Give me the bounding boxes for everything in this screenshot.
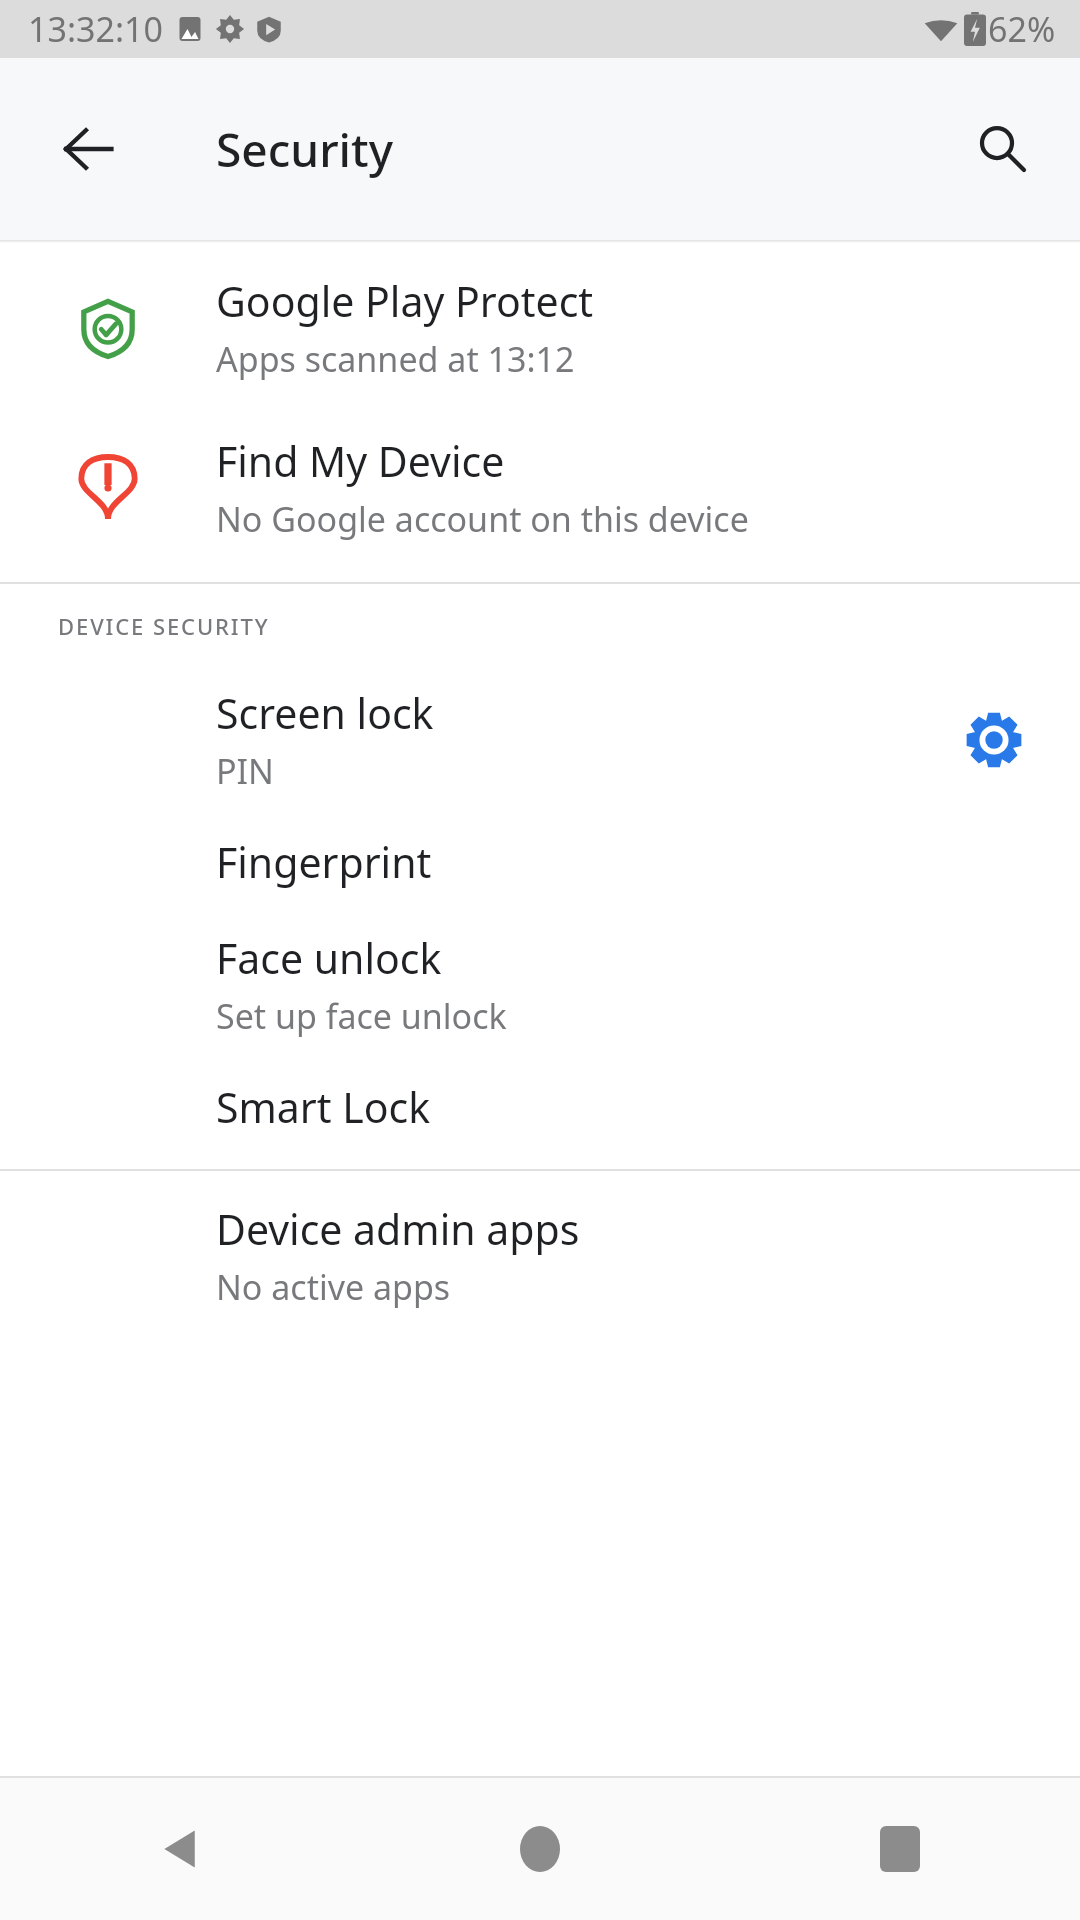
button[interactable]: Google Play Protect [0,269,1080,386]
staticText: Face unlock [216,930,442,986]
staticText: Fingerprint [216,834,432,890]
staticText: Security [216,118,393,181]
staticText: Set up face unlock [216,993,507,1039]
button[interactable]: Search [946,93,1058,205]
staticText: No Google account on this device [216,496,749,542]
staticText: 62% [988,6,1056,52]
staticText: Smart Lock [216,1079,431,1135]
button[interactable]: Home [360,1778,720,1920]
staticText: Apps scanned at 13:12 [216,336,575,382]
staticText: Find My Device [216,433,505,489]
button[interactable]: Screen lock settings [956,702,1032,778]
staticText: Device admin apps [216,1201,580,1257]
staticText: 13:32:10 [28,6,163,52]
button[interactable]: Back [32,93,144,205]
button[interactable]: Screen lock [0,681,1080,798]
button[interactable]: Back [0,1778,360,1920]
button[interactable]: Device admin apps [0,1197,1080,1314]
button[interactable]: Face unlock [0,926,1080,1043]
button[interactable]: Smart Lock [0,1075,1080,1139]
button[interactable]: Find My Device [0,429,1080,546]
staticText: Screen lock [216,685,434,741]
button[interactable]: Recent apps [720,1778,1080,1920]
staticText: Google Play Protect [216,273,594,329]
button[interactable]: Fingerprint [0,830,1080,894]
staticText: PIN [216,748,274,794]
staticText: No active apps [216,1264,451,1310]
staticText: DEVICE SECURITY [58,611,270,641]
